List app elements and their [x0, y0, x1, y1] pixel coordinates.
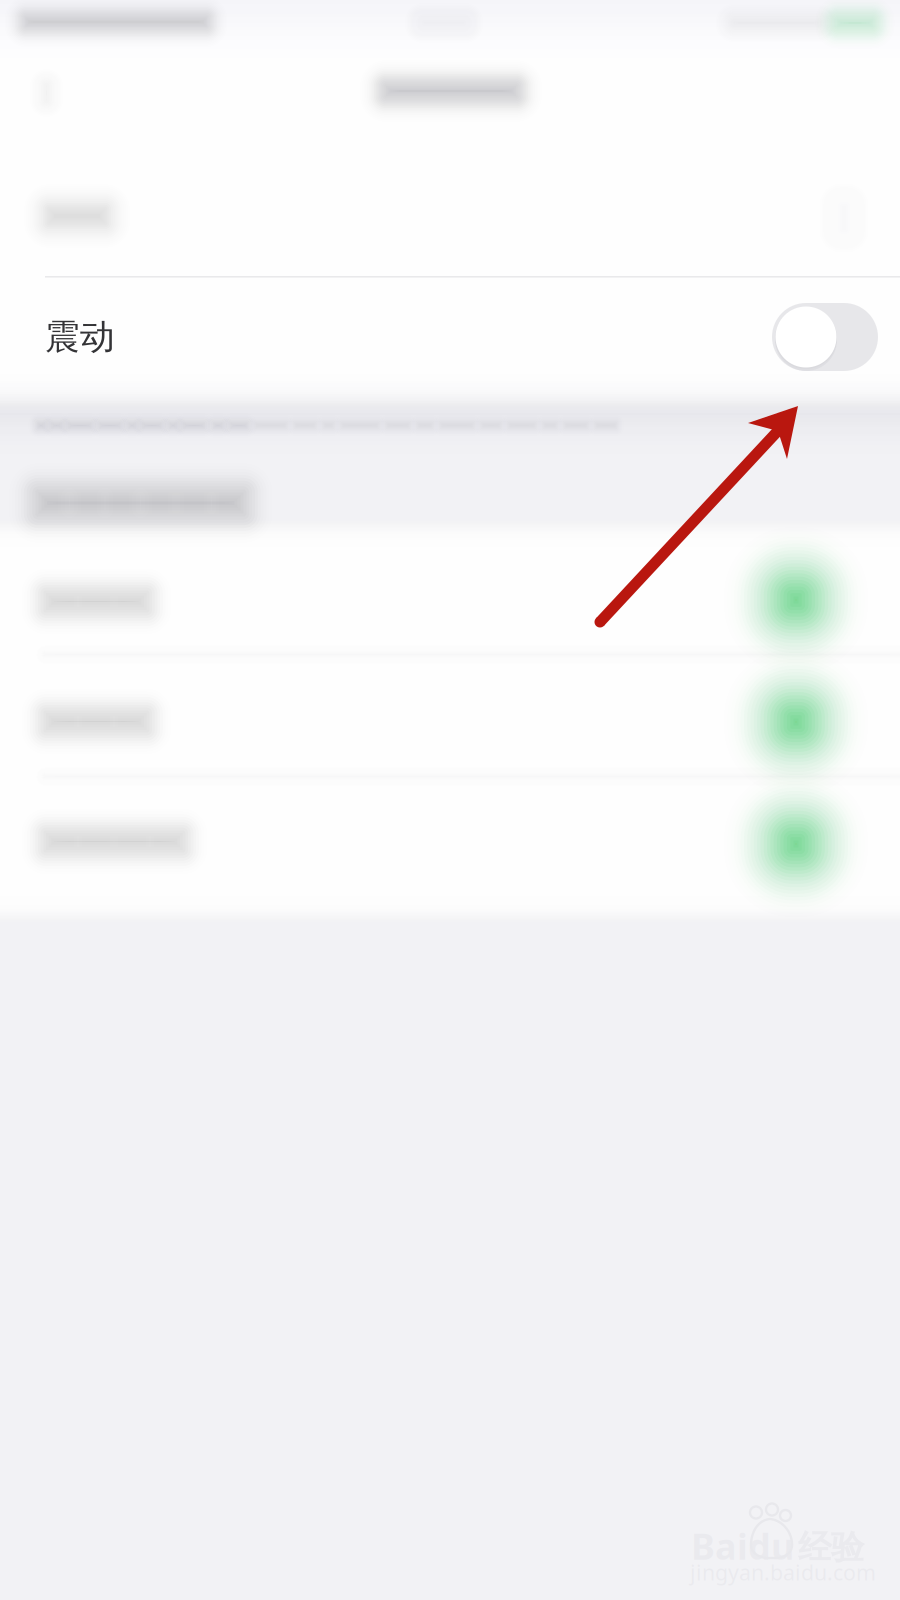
- staticText: 经验: [798, 1527, 864, 1568]
- staticText: 震动: [45, 316, 115, 358]
- button[interactable]: Back: [0, 0, 110, 100]
- staticText: Baidu: [691, 1522, 794, 1570]
- button[interactable]: 震动: [0, 277, 900, 397]
